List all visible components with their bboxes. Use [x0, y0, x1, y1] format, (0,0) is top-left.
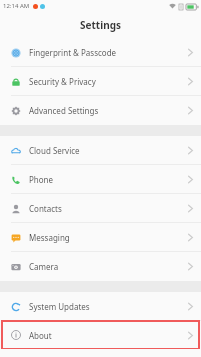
- staticText: Security & Privacy: [29, 76, 96, 87]
- button[interactable]: Messaging: [0, 223, 201, 252]
- staticText: Fingerprint & Passcode: [29, 47, 117, 58]
- button[interactable]: Phone: [0, 165, 201, 194]
- staticText: Messaging: [29, 232, 70, 243]
- staticText: Settings: [80, 18, 121, 32]
- button[interactable]: Camera: [0, 252, 201, 281]
- staticText: Cloud Service: [29, 145, 80, 156]
- staticText: About: [29, 330, 52, 341]
- staticText: Phone: [29, 174, 54, 185]
- button[interactable]: Cloud Service: [0, 136, 201, 165]
- staticText: System Updates: [29, 301, 90, 312]
- staticText: Contacts: [29, 203, 62, 214]
- button[interactable]: About: [0, 321, 201, 349]
- button[interactable]: Fingerprint & Passcode: [0, 38, 201, 67]
- staticText: 12:14 AM: [3, 2, 30, 10]
- button[interactable]: System Updates: [0, 292, 201, 321]
- button[interactable]: Security & Privacy: [0, 67, 201, 96]
- staticText: Advanced Settings: [29, 105, 99, 116]
- button[interactable]: Advanced Settings: [0, 96, 201, 125]
- staticText: Camera: [29, 261, 59, 272]
- button[interactable]: Contacts: [0, 194, 201, 223]
